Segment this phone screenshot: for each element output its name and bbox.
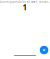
- button[interactable]: Compose: [40, 46, 48, 54]
- staticText: Lorem ipsum dolor sit amet, consectetur …: [0, 0, 50, 4]
- staticText: 1: [22, 2, 27, 12]
